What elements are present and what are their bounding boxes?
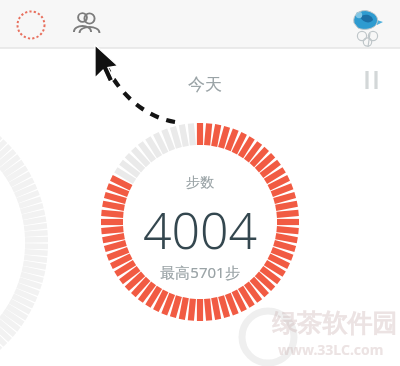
staticText: www.33LC.com (278, 340, 384, 359)
button[interactable]: Pause (352, 66, 392, 100)
staticText: 4004 (120, 196, 280, 258)
button[interactable]: Activity ring (14, 8, 48, 42)
staticText: 最高5701步 (140, 262, 260, 286)
staticText: 步数 (170, 174, 230, 196)
button[interactable]: Character (342, 3, 386, 47)
staticText: 今天 (176, 74, 234, 102)
button[interactable]: 今天 (176, 74, 234, 102)
button[interactable]: Friends (70, 9, 104, 41)
staticText: 绿茶软件园 (272, 308, 397, 339)
